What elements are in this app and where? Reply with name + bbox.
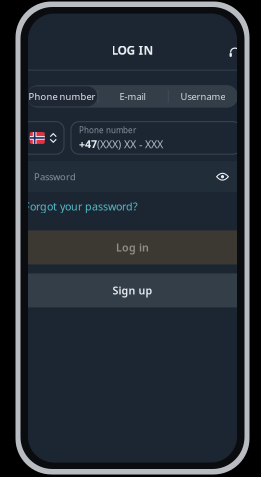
staticText: (XXX) XX - XXX — [97, 137, 163, 151]
staticText: Forgot your password? — [24, 199, 138, 213]
button[interactable]: Forgot your password? — [24, 199, 138, 213]
button[interactable]: E-mail — [97, 86, 168, 106]
button[interactable]: Sign up — [28, 273, 237, 307]
staticText: Password — [34, 170, 76, 183]
staticText: Username — [180, 90, 225, 103]
staticText: Phone number — [79, 125, 136, 135]
staticText: Sign up — [112, 283, 152, 297]
button[interactable]: Show password — [216, 171, 229, 182]
staticText: Phone number — [29, 90, 96, 103]
button[interactable]: Customer support — [226, 43, 244, 61]
button[interactable]: Phone number — [27, 86, 97, 106]
button[interactable]: Username — [168, 86, 238, 106]
button[interactable]: Log in — [28, 230, 237, 264]
staticText: E-mail — [119, 90, 145, 103]
button[interactable]: Select country code — [22, 122, 64, 154]
staticText: Log in — [116, 240, 149, 254]
staticText: LOG IN — [111, 42, 153, 58]
staticText: +47 — [79, 137, 97, 151]
